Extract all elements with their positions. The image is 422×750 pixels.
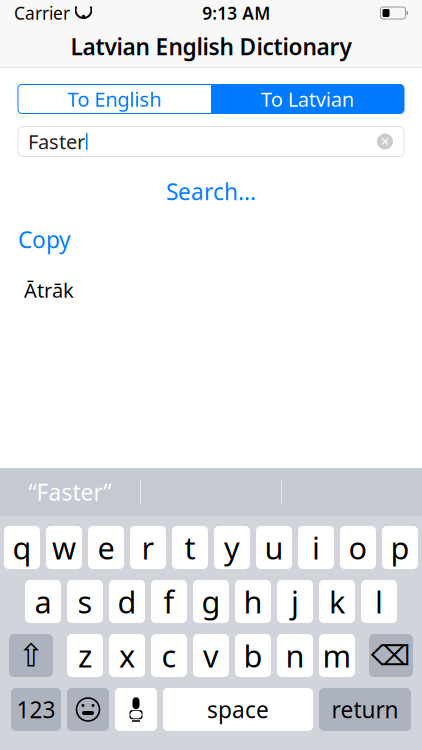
staticText: Faster <box>28 128 85 155</box>
button[interactable]: p <box>382 526 418 569</box>
staticText: o <box>348 527 367 568</box>
button[interactable]: y <box>214 526 250 569</box>
staticText: c <box>161 635 176 676</box>
staticText: n <box>285 635 304 676</box>
staticText: Carrier <box>14 1 70 24</box>
button[interactable]: u <box>256 526 292 569</box>
staticText: 9:13 AM <box>202 1 270 24</box>
button[interactable]: k <box>319 580 355 623</box>
button[interactable]: i <box>298 526 334 569</box>
staticText: l <box>375 581 383 622</box>
staticText: b <box>243 635 262 676</box>
staticText: 123 <box>16 694 55 724</box>
button[interactable]: h <box>235 580 271 623</box>
staticText: “Faster” <box>28 477 111 507</box>
button[interactable]: b <box>235 634 271 677</box>
staticText: q <box>12 527 31 568</box>
staticText: y <box>224 527 240 568</box>
button[interactable]: x <box>109 634 145 677</box>
button[interactable]: To Latvian <box>211 84 404 113</box>
button[interactable]: t <box>172 526 208 569</box>
staticText: g <box>201 581 220 622</box>
button[interactable]: Delete <box>369 634 413 677</box>
button[interactable]: Shift <box>9 634 53 677</box>
button[interactable]: f <box>151 580 187 623</box>
button[interactable]: o <box>340 526 376 569</box>
staticText: m <box>322 635 351 676</box>
button[interactable]: Emoji <box>67 688 109 731</box>
button[interactable]: return <box>319 688 411 731</box>
button[interactable]: q <box>4 526 40 569</box>
button[interactable]: space <box>163 688 313 731</box>
staticText: ⇧ <box>17 637 44 674</box>
staticText: v <box>203 635 219 676</box>
button[interactable]: Search... <box>18 180 404 202</box>
staticText: Ātrāk <box>24 277 74 303</box>
staticText: h <box>243 581 262 622</box>
button[interactable]: z <box>67 634 103 677</box>
button[interactable]: Dictation <box>115 688 157 731</box>
button[interactable]: Copy <box>18 224 71 255</box>
button[interactable]: c <box>151 634 187 677</box>
staticText: Latvian English Dictionary <box>70 31 351 61</box>
staticText: x <box>119 635 135 676</box>
staticText: w <box>52 527 76 568</box>
staticText: j <box>291 581 299 622</box>
staticText: f <box>163 581 174 622</box>
staticText: ✕ <box>380 135 390 148</box>
staticText: a <box>34 581 51 622</box>
button[interactable]: v <box>193 634 229 677</box>
button[interactable]: l <box>361 580 397 623</box>
button[interactable]: j <box>277 580 313 623</box>
staticText: d <box>117 581 136 622</box>
button[interactable]: d <box>109 580 145 623</box>
staticText: r <box>141 527 154 568</box>
button[interactable]: r <box>130 526 166 569</box>
staticText: To Latvian <box>261 86 354 112</box>
button[interactable]: To English <box>18 84 211 113</box>
button[interactable]: “Faster” <box>0 470 140 514</box>
staticText: space <box>207 694 269 724</box>
staticText: s <box>77 581 92 622</box>
staticText: u <box>264 527 283 568</box>
staticText: z <box>78 635 92 676</box>
button[interactable]: s <box>67 580 103 623</box>
button[interactable]: a <box>25 580 61 623</box>
staticText: k <box>329 581 345 622</box>
button[interactable]: g <box>193 580 229 623</box>
staticText: To English <box>67 86 161 112</box>
staticText: ⌫ <box>371 640 411 671</box>
staticText: return <box>331 694 398 724</box>
button[interactable]: Clear text <box>372 128 398 154</box>
staticText: Copy <box>18 224 71 255</box>
button[interactable]: m <box>319 634 355 677</box>
staticText: e <box>97 527 114 568</box>
button[interactable]: 123 <box>11 688 61 731</box>
button[interactable]: n <box>277 634 313 677</box>
staticText: t <box>184 527 195 568</box>
staticText: i <box>312 527 320 568</box>
button[interactable]: w <box>46 526 82 569</box>
staticText: Search... <box>166 176 256 206</box>
staticText: p <box>390 527 409 568</box>
button[interactable]: e <box>88 526 124 569</box>
